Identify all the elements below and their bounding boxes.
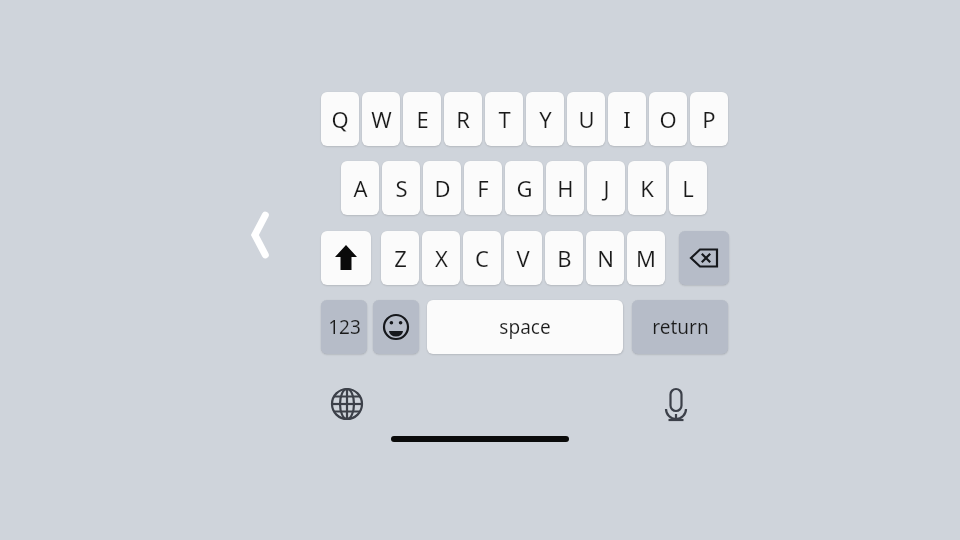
staticText: V [516,243,530,273]
button[interactable]: space [427,300,623,354]
button[interactable]: F [464,161,502,215]
staticText: Q [331,104,349,134]
staticText: I [623,104,631,134]
staticText: P [702,104,716,134]
staticText: A [353,173,368,203]
staticText: X [435,243,448,273]
staticText: R [456,104,470,134]
button[interactable]: Shift [321,231,371,285]
staticText: F [477,173,489,203]
button[interactable]: I [608,92,646,146]
button[interactable]: Change keyboard [329,386,365,422]
button[interactable]: O [649,92,687,146]
button[interactable]: U [567,92,605,146]
button[interactable]: Dictation [658,384,694,424]
staticText: J [603,173,610,203]
button[interactable]: Y [526,92,564,146]
button[interactable]: S [382,161,420,215]
staticText: D [434,173,451,203]
button[interactable]: K [628,161,666,215]
button[interactable]: Z [381,231,419,285]
button[interactable]: B [545,231,583,285]
button[interactable]: X [422,231,460,285]
button[interactable]: L [669,161,707,215]
staticText: H [557,173,574,203]
button[interactable]: C [463,231,501,285]
staticText: 123 [328,314,361,340]
staticText: M [636,243,656,273]
button[interactable]: N [586,231,624,285]
staticText: E [416,104,429,134]
staticText: return [652,314,709,340]
staticText: Z [394,243,407,273]
button[interactable]: G [505,161,543,215]
staticText: C [475,243,489,273]
staticText: T [498,104,511,134]
staticText: S [395,173,408,203]
button[interactable]: D [423,161,461,215]
button[interactable]: J [587,161,625,215]
button[interactable]: P [690,92,728,146]
staticText: K [640,173,654,203]
button[interactable]: H [546,161,584,215]
staticText: W [371,104,392,134]
staticText: space [499,314,551,340]
button[interactable]: V [504,231,542,285]
button[interactable]: R [444,92,482,146]
staticText: U [578,104,595,134]
staticText: N [597,243,614,273]
staticText: B [557,243,572,273]
staticText: Y [539,104,552,134]
button[interactable]: E [403,92,441,146]
button[interactable]: A [341,161,379,215]
button[interactable]: Back [243,205,279,265]
staticText: O [659,104,677,134]
button[interactable]: Q [321,92,359,146]
staticText: L [682,173,694,203]
staticText: G [516,173,533,203]
button[interactable]: Emoji [373,300,419,354]
button[interactable]: W [362,92,400,146]
button[interactable]: T [485,92,523,146]
button[interactable]: return [632,300,728,354]
button[interactable]: M [627,231,665,285]
button[interactable]: Backspace [679,231,729,285]
button[interactable]: 123 [321,300,367,354]
